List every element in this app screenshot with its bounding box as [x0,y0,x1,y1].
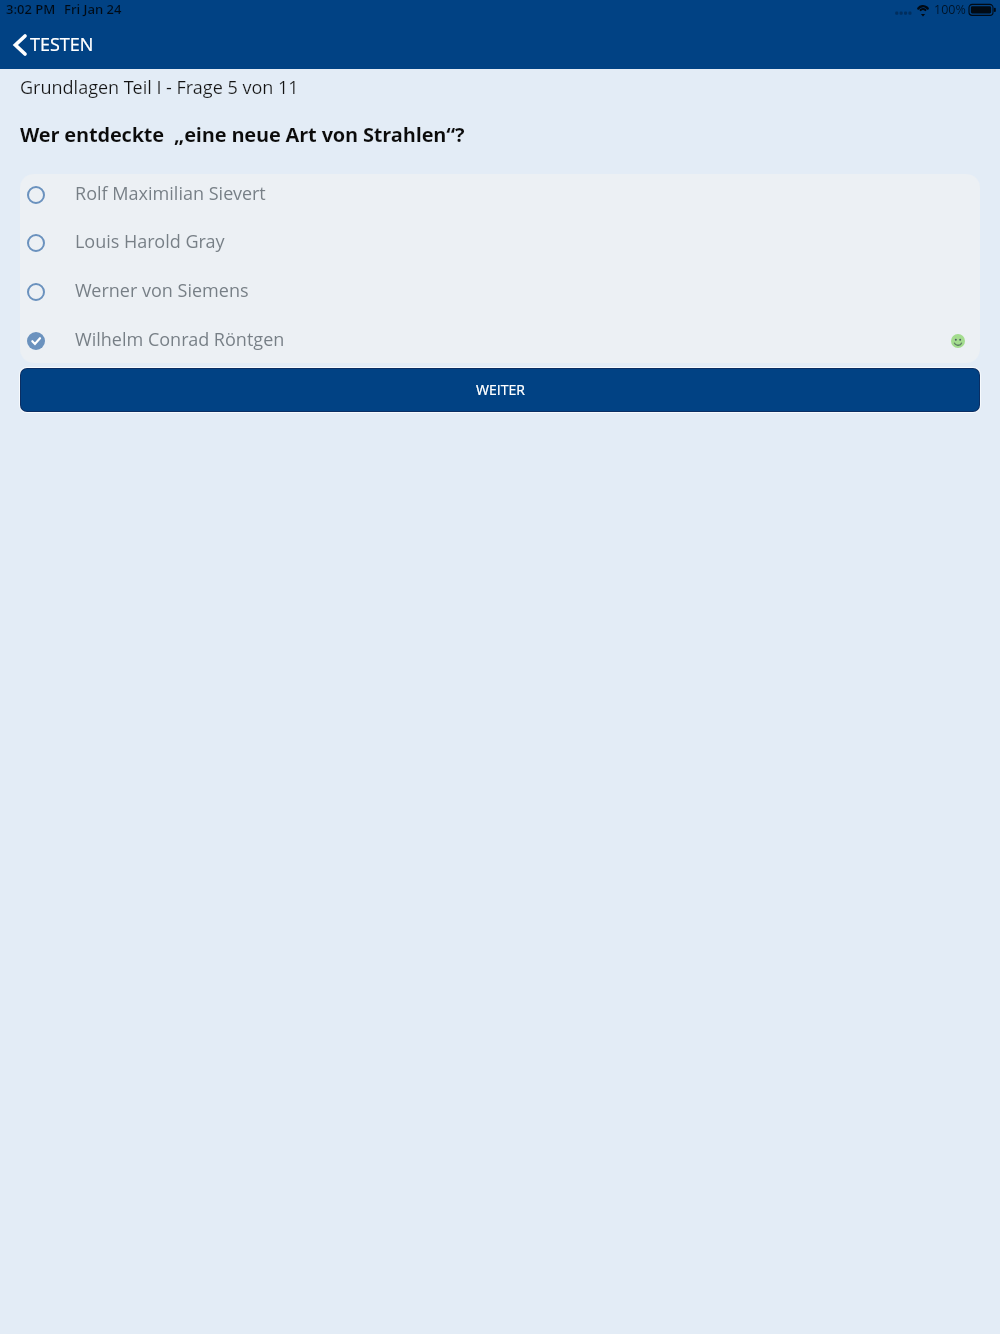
staticText: WEITER [476,380,525,399]
staticText: Fri Jan 24 [64,0,122,18]
staticText: Werner von Siemens [75,278,249,303]
button[interactable]: Louis Harold Gray [20,219,980,267]
staticText: Wer entdeckte „eine neue Art von Strahle… [20,121,465,148]
button[interactable]: Werner von Siemens [20,268,980,316]
staticText: 3:02 PM [6,0,56,18]
button[interactable]: Back to TESTEN [0,22,1000,69]
button[interactable]: Wilhelm Conrad Röntgen [20,317,980,363]
staticText: Wilhelm Conrad Röntgen [75,327,285,352]
staticText: Louis Harold Gray [75,229,225,254]
button[interactable]: Rolf Maximilian Sievert [20,174,980,219]
staticText: TESTEN [30,32,94,57]
staticText: Rolf Maximilian Sievert [75,181,266,206]
staticText: Grundlagen Teil I - Frage 5 von 11 [20,75,299,100]
button[interactable]: WEITER [21,369,979,411]
staticText: 100% [934,1,966,18]
